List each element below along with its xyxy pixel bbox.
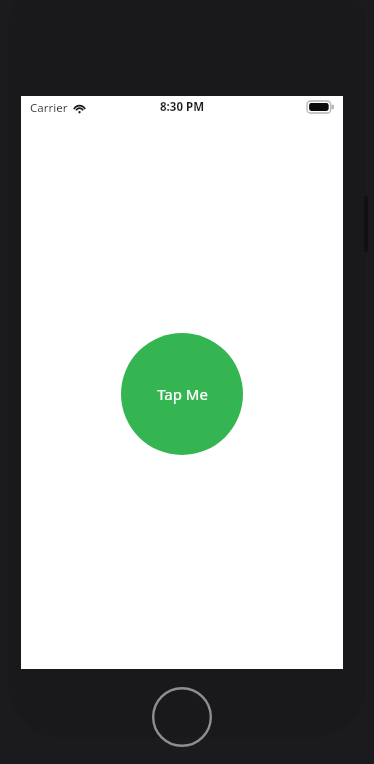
button[interactable]: Tap Me (121, 333, 243, 455)
staticText: Carrier (30, 100, 68, 116)
staticText: Tap Me (157, 384, 208, 404)
button[interactable]: Home (152, 687, 212, 747)
staticText: 8:30 PM (160, 99, 204, 115)
